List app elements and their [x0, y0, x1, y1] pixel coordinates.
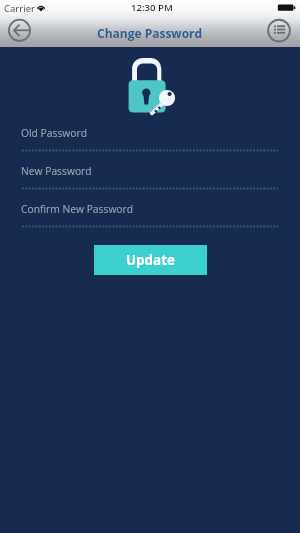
staticText: 12:30 PM [131, 1, 173, 14]
button[interactable]: Update [94, 245, 207, 275]
staticText: Carrier [4, 2, 35, 15]
staticText: Change Password [97, 25, 203, 41]
staticText: Old Password [21, 126, 87, 140]
staticText: Confirm New Password [21, 202, 134, 216]
button[interactable]: Back [6, 17, 33, 44]
staticText: New Password [21, 164, 92, 178]
staticText: Update [126, 251, 175, 269]
button[interactable]: Menu [266, 17, 293, 44]
